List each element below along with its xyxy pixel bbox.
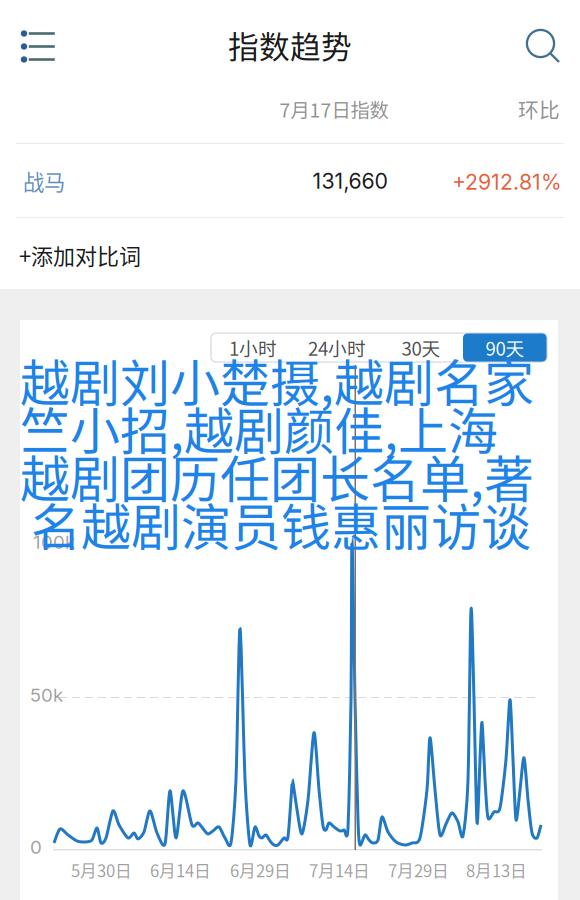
staticText: 环比 [518,94,560,124]
staticText: 7月14日 [309,858,370,882]
staticText: 90天 [485,334,524,361]
staticText: 30天 [401,334,440,361]
staticText: +2912.81% [452,169,562,195]
staticText: 名越剧演员钱惠丽访谈 [20,488,531,560]
staticText: 8月13日 [466,858,527,882]
staticText: 6月29日 [230,858,291,882]
button[interactable]: 1小时 [211,333,295,362]
staticText: 竺小招,越剧颜佳,上海 [20,392,498,464]
staticText: 7月17日指数 [279,95,388,123]
staticText: 越剧刘小楚摄,越剧名家 [20,344,534,416]
button[interactable]: +添加对比词 [0,218,580,289]
staticText: 100k [33,531,75,553]
button[interactable]: 90天 [463,333,547,362]
staticText: 24小时 [308,334,366,361]
staticText: 0 [30,836,42,858]
button[interactable]: 战马 [0,144,580,218]
staticText: 战马 [23,166,65,196]
staticText: 越剧团历任团长名单,著 [20,440,534,512]
staticText: 5月30日 [71,858,132,882]
staticText: 1小时 [229,334,277,361]
staticText: 131,660 [312,168,387,194]
staticText: 50k [30,684,63,706]
staticText: 7月29日 [388,858,449,882]
button[interactable]: 24小时 [295,333,379,362]
staticText: +添加对比词 [19,239,141,271]
staticText: 6月14日 [150,858,211,882]
button[interactable]: 30天 [379,333,463,362]
staticText: 指数趋势 [228,23,352,67]
button[interactable]: Menu [0,13,66,75]
button[interactable]: Search [514,13,580,75]
